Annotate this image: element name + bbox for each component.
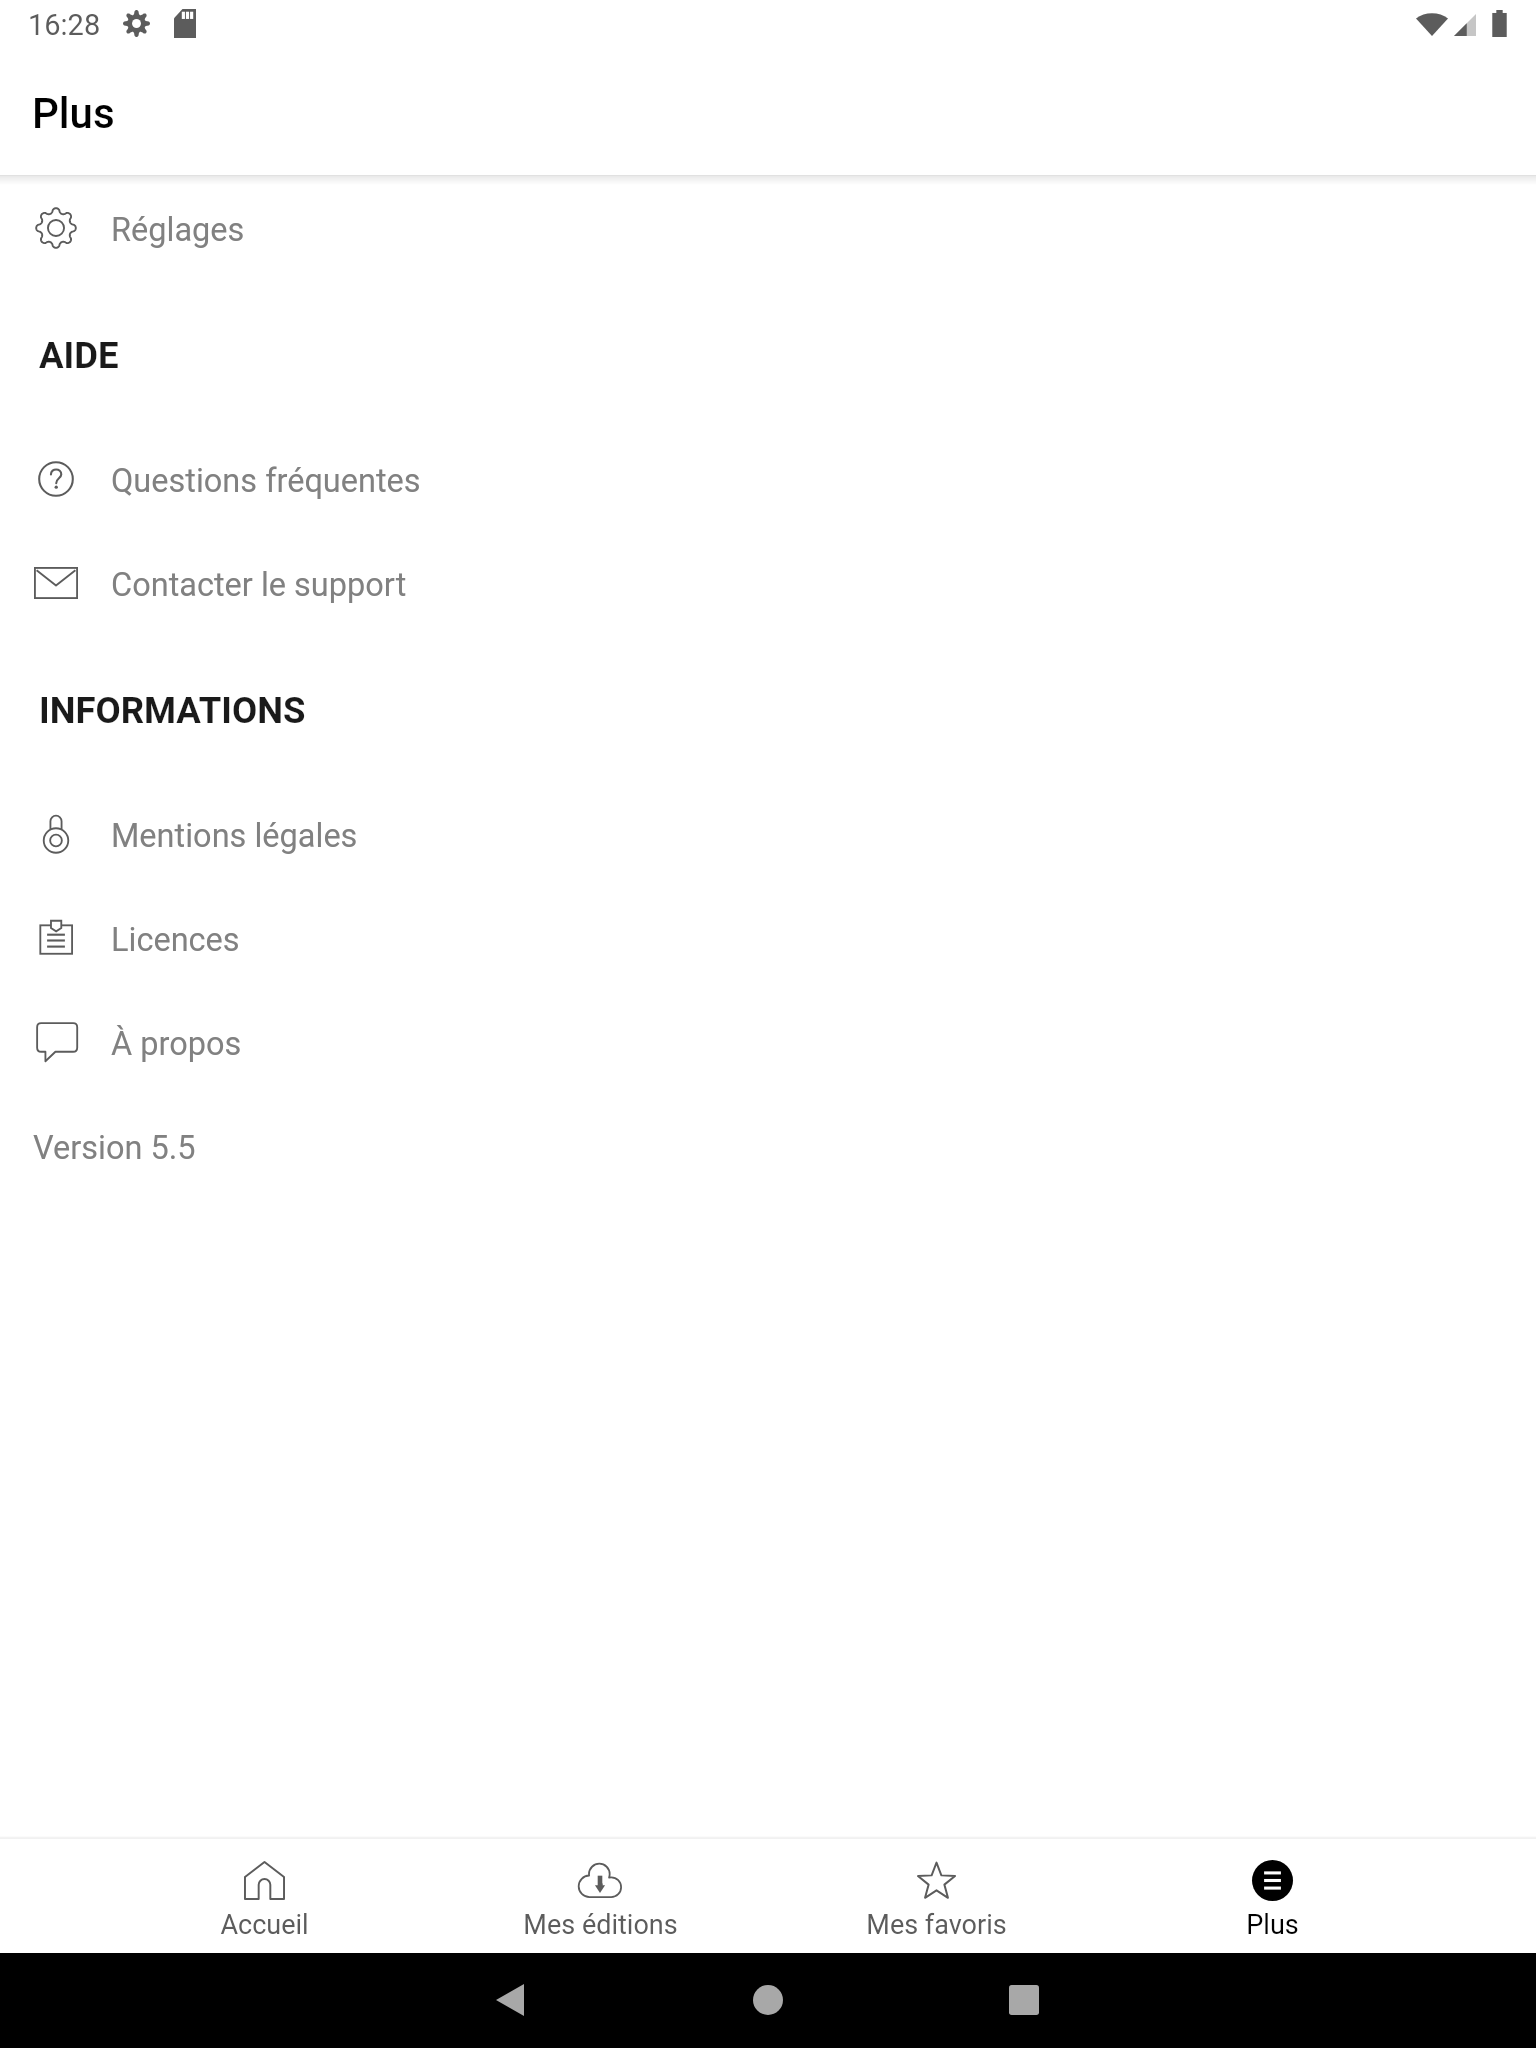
staticText: Mentions légales [111,817,358,855]
button[interactable]: Mes éditions [432,1839,768,1953]
staticText: Accueil [220,1909,309,1941]
staticText: Licences [111,921,240,959]
staticText: Plus [32,89,115,138]
button[interactable]: À propos [0,990,1536,1094]
staticText: Questions fréquentes [111,462,421,500]
staticText: AIDE [39,334,119,377]
other: Back [496,1984,524,2016]
button[interactable]: Contacter le support [0,531,1536,635]
other: Recent apps [1009,1985,1039,2015]
staticText: 16:28 [28,8,101,42]
staticText: INFORMATIONS [39,689,306,732]
button[interactable]: Plus [1104,1839,1440,1953]
button[interactable]: Questions fréquentes [0,427,1536,531]
staticText: Version 5.5 [33,1129,196,1167]
button[interactable]: Mes favoris [768,1839,1104,1953]
staticText: Plus [1246,1909,1299,1941]
staticText: Réglages [111,211,245,249]
button[interactable]: Licences [0,886,1536,990]
staticText: Mes éditions [523,1909,678,1941]
button[interactable]: Mentions légales [0,782,1536,886]
staticText: Mes favoris [866,1909,1007,1941]
button[interactable]: Réglages [0,176,1536,280]
other: Home [753,1985,783,2015]
button[interactable]: Accueil [96,1839,432,1953]
staticText: À propos [111,1025,242,1063]
staticText: Contacter le support [111,566,407,604]
